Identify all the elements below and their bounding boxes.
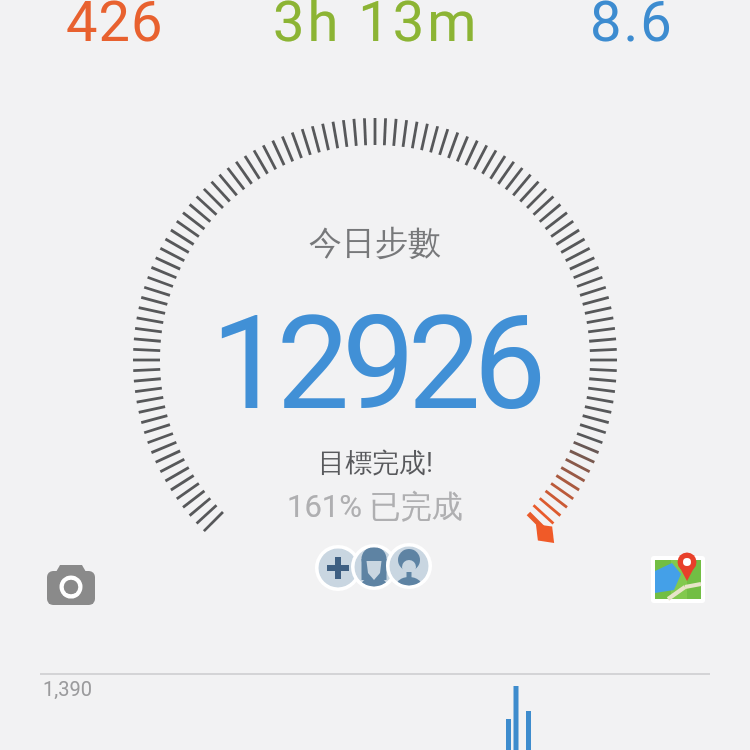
staticText: 161% 已完成 xyxy=(287,487,463,526)
staticText: 今日步數 xyxy=(309,222,441,264)
staticText: 目標完成! xyxy=(318,446,433,480)
staticText: 3h 13m xyxy=(273,0,480,55)
staticText: 1,390 xyxy=(43,677,92,700)
button[interactable] xyxy=(361,545,407,591)
button[interactable] xyxy=(40,558,104,614)
button[interactable]: 8.6 xyxy=(532,0,732,62)
button[interactable]: 3h 13m xyxy=(236,0,516,62)
staticText: 426 xyxy=(66,0,164,55)
button[interactable]: 426 xyxy=(15,0,215,62)
button[interactable] xyxy=(315,545,361,591)
staticText: 12926 xyxy=(211,287,539,439)
staticText: 8.6 xyxy=(590,0,674,55)
button[interactable] xyxy=(645,548,711,608)
